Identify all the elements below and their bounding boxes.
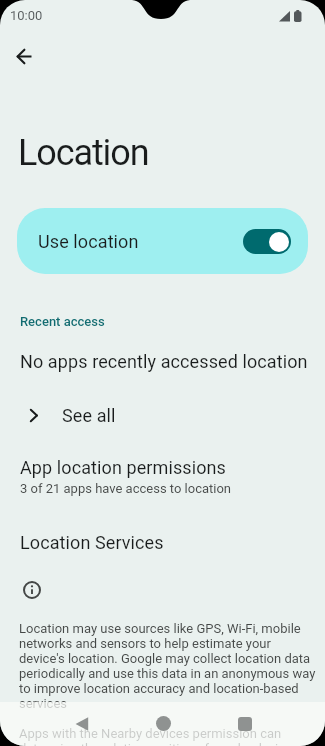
staticText: Recent access: [20, 314, 105, 329]
button[interactable]: Location Services: [0, 524, 325, 560]
staticText: determine the relative position of nearb…: [19, 741, 299, 746]
button[interactable]: [229, 708, 260, 739]
staticText: Location: [18, 132, 149, 174]
button[interactable]: [66, 708, 97, 739]
button[interactable]: See all: [0, 394, 325, 436]
staticText: 10:00: [10, 8, 43, 23]
button[interactable]: Use location: [17, 208, 308, 274]
button[interactable]: [6, 38, 42, 74]
staticText: Location may use sources like GPS, Wi-Fi…: [19, 621, 316, 711]
staticText: Apps with the Nearby devices permission …: [19, 726, 282, 741]
button[interactable]: [148, 708, 178, 738]
staticText: See all: [62, 405, 116, 426]
staticText: Use location: [38, 231, 139, 252]
button[interactable]: App location permissions: [0, 450, 325, 500]
staticText: Location Services: [20, 532, 164, 553]
staticText: App location permissions: [20, 457, 226, 478]
staticText: 3 of 21 apps have access to location: [20, 481, 232, 496]
staticText: No apps recently accessed location: [20, 351, 308, 372]
